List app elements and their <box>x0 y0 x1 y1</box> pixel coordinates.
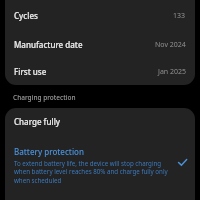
staticText: Charge fully <box>14 116 61 127</box>
staticText: Nov 2024 <box>155 40 186 50</box>
button[interactable]: Battery protection <box>5 145 195 188</box>
button[interactable]: Cycles <box>5 0 195 31</box>
button[interactable]: Charge fully <box>5 108 195 135</box>
staticText: Battery protection <box>14 146 84 157</box>
staticText: Charging protection <box>13 93 76 102</box>
button[interactable]: Manufacture date <box>5 31 195 58</box>
other: Selected <box>176 156 188 168</box>
staticText: To extend battery life, the device will … <box>14 159 172 184</box>
staticText: Jan 2025 <box>158 67 186 77</box>
staticText: First use <box>14 66 47 77</box>
staticText: 133 <box>173 11 186 21</box>
button[interactable]: First use <box>5 58 195 85</box>
staticText: Cycles <box>14 10 38 21</box>
staticText: Manufacture date <box>14 39 83 50</box>
